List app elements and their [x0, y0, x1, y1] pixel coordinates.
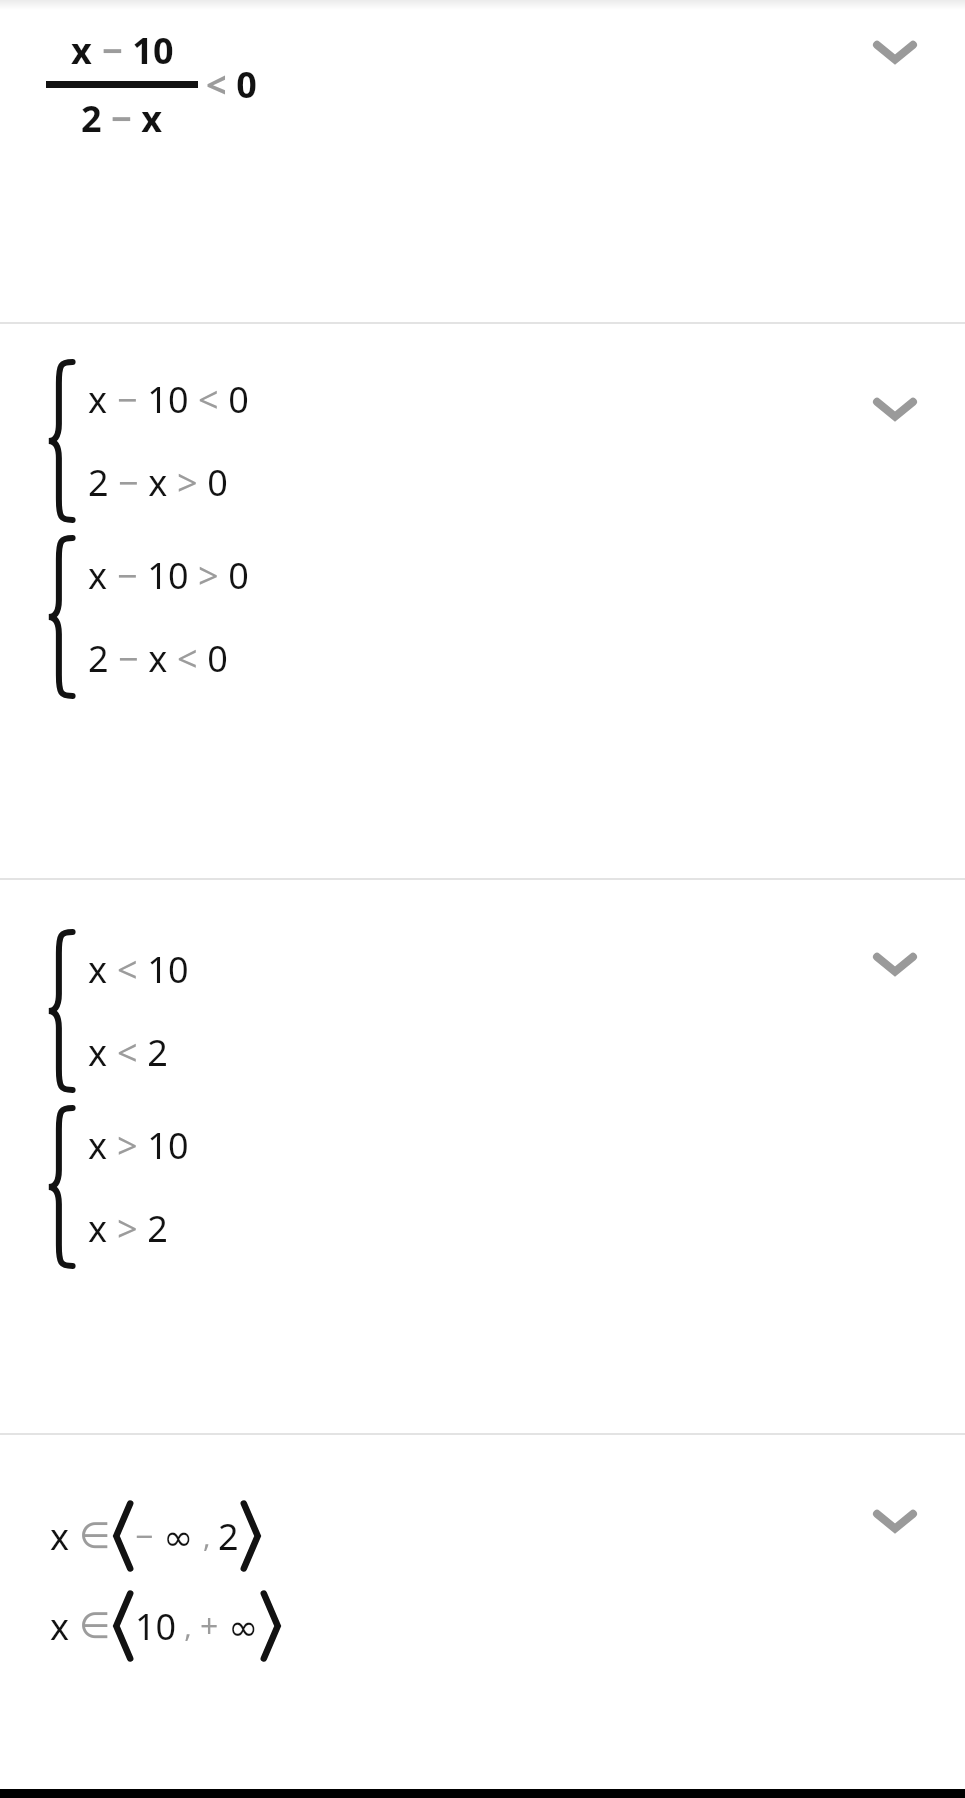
staticText: <: [198, 375, 219, 424]
staticText: −: [135, 1514, 154, 1558]
staticText: 10: [138, 375, 198, 424]
staticText: x: [132, 94, 163, 143]
staticText: 2: [88, 458, 118, 507]
staticText: <: [206, 60, 227, 109]
staticText: ∞: [219, 1602, 259, 1651]
staticText: >: [198, 551, 219, 600]
staticText: x: [71, 26, 102, 75]
staticText: x: [139, 458, 177, 507]
staticText: −: [118, 458, 139, 507]
staticText: >: [177, 458, 198, 507]
button[interactable]: x: [0, 324, 965, 878]
staticText: >: [117, 1204, 138, 1253]
staticText: <: [117, 1028, 138, 1077]
staticText: 0: [198, 634, 228, 683]
staticText: −: [118, 634, 139, 683]
staticText: +: [200, 1604, 219, 1648]
staticText: x: [88, 1121, 117, 1170]
staticText: 10: [138, 551, 198, 600]
staticText: 2: [138, 1204, 168, 1253]
staticText: −: [102, 26, 123, 75]
staticText: x: [88, 945, 117, 994]
staticText: <: [177, 634, 198, 683]
staticText: ∈: [79, 1515, 111, 1557]
staticText: ,: [203, 1517, 218, 1555]
staticText: x: [88, 1204, 117, 1253]
button[interactable]: Expand step: [859, 928, 931, 1000]
staticText: −: [111, 94, 132, 143]
staticText: 2: [218, 1512, 239, 1561]
staticText: 0: [227, 60, 257, 109]
staticText: 10: [135, 1602, 177, 1651]
staticText: −: [117, 551, 138, 600]
button[interactable]: Expand step: [859, 1485, 931, 1557]
staticText: <: [117, 945, 138, 994]
staticText: 10: [123, 26, 174, 75]
staticText: x: [88, 375, 117, 424]
staticText: 0: [198, 458, 228, 507]
button[interactable]: Expand step: [859, 373, 931, 445]
staticText: x: [88, 551, 117, 600]
button[interactable]: Expand step: [859, 16, 931, 88]
button[interactable]: x: [0, 10, 965, 322]
staticText: 2: [138, 1028, 168, 1077]
staticText: 2: [81, 94, 111, 143]
staticText: −: [117, 375, 138, 424]
staticText: x: [88, 1028, 117, 1077]
staticText: ∈: [79, 1605, 111, 1647]
button[interactable]: x: [0, 1435, 965, 1789]
button[interactable]: x: [0, 880, 965, 1433]
staticText: 2: [88, 634, 118, 683]
staticText: ,: [177, 1607, 200, 1645]
staticText: x: [50, 1512, 79, 1561]
staticText: >: [117, 1121, 138, 1170]
staticText: 10: [138, 1121, 189, 1170]
staticText: x: [50, 1602, 79, 1651]
staticText: x: [139, 634, 177, 683]
staticText: 0: [219, 375, 249, 424]
staticText: 10: [138, 945, 189, 994]
staticText: ∞: [154, 1512, 203, 1561]
staticText: 0: [219, 551, 249, 600]
